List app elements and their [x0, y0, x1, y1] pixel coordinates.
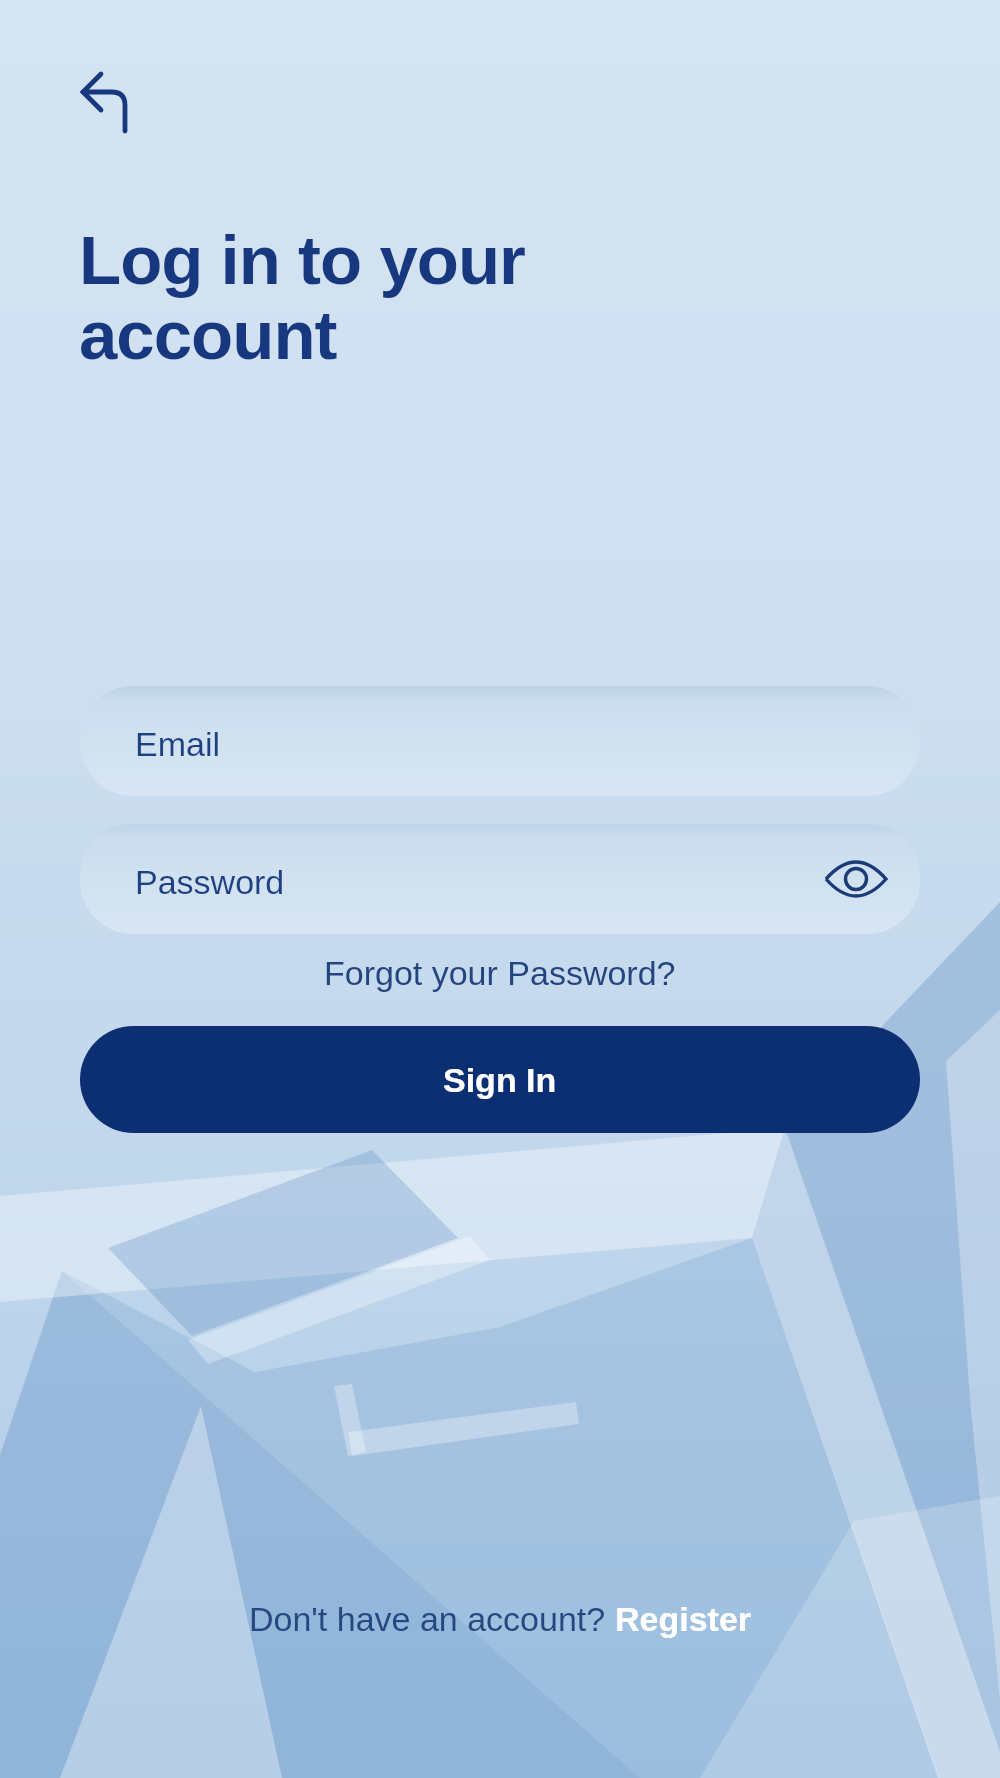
- button[interactable]: [824, 855, 888, 903]
- staticText: Sign In: [443, 1061, 557, 1099]
- staticText: Email: [135, 725, 221, 763]
- staticText: Password: [135, 863, 285, 901]
- button[interactable]: Password: [80, 824, 920, 934]
- button[interactable]: Forgot your Password?: [324, 954, 676, 992]
- staticText: Don't have an account?: [249, 1600, 615, 1638]
- staticText: Log in to your account: [79, 222, 525, 374]
- button[interactable]: Register: [615, 1600, 752, 1638]
- button[interactable]: Sign In: [80, 1026, 920, 1133]
- button[interactable]: [64, 56, 136, 140]
- button[interactable]: Email: [80, 686, 920, 796]
